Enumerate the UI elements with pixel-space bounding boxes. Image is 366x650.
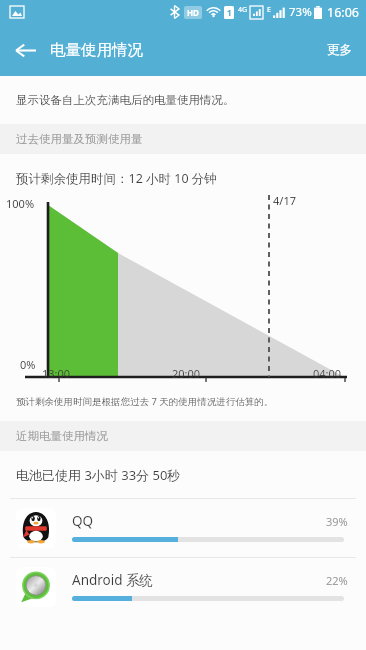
staticText: QQ bbox=[72, 512, 94, 530]
button[interactable]: Back bbox=[4, 29, 46, 71]
button[interactable]: Android 系统 bbox=[0, 558, 366, 616]
staticText: 预计剩余使用时间：12 小时 10 分钟 bbox=[16, 170, 217, 187]
staticText: 过去使用量及预测使用量 bbox=[16, 132, 143, 146]
staticText: 显示设备自上次充满电后的电量使用情况。 bbox=[16, 93, 235, 107]
staticText: 73% bbox=[289, 4, 312, 20]
staticText: 更多 bbox=[327, 42, 352, 58]
staticText: 电量使用情况 bbox=[50, 40, 143, 60]
staticText: 16:06 bbox=[327, 4, 359, 21]
staticText: Android 系统 bbox=[72, 571, 154, 589]
staticText: 20:00 bbox=[172, 366, 201, 381]
staticText: 预计剩余使用时间是根据您过去 7 天的使用情况进行估算的。 bbox=[16, 395, 274, 408]
staticText: 1 bbox=[227, 7, 232, 18]
staticText: 100% bbox=[6, 196, 35, 211]
staticText: 4G bbox=[238, 5, 248, 15]
button[interactable]: QQ bbox=[0, 499, 366, 557]
staticText: HD bbox=[187, 7, 199, 18]
staticText: 22% bbox=[326, 573, 348, 588]
staticText: 4/17 bbox=[273, 193, 296, 208]
staticText: 13:00 bbox=[42, 366, 71, 381]
staticText: 39% bbox=[326, 514, 348, 529]
staticText: 0% bbox=[20, 357, 36, 372]
staticText: 04:00 bbox=[313, 366, 342, 381]
staticText: 电池已使用 3小时 33分 50秒 bbox=[16, 466, 181, 484]
button[interactable]: 更多 bbox=[313, 28, 366, 72]
staticText: E bbox=[267, 5, 271, 15]
staticText: 近期电量使用情况 bbox=[16, 429, 108, 443]
